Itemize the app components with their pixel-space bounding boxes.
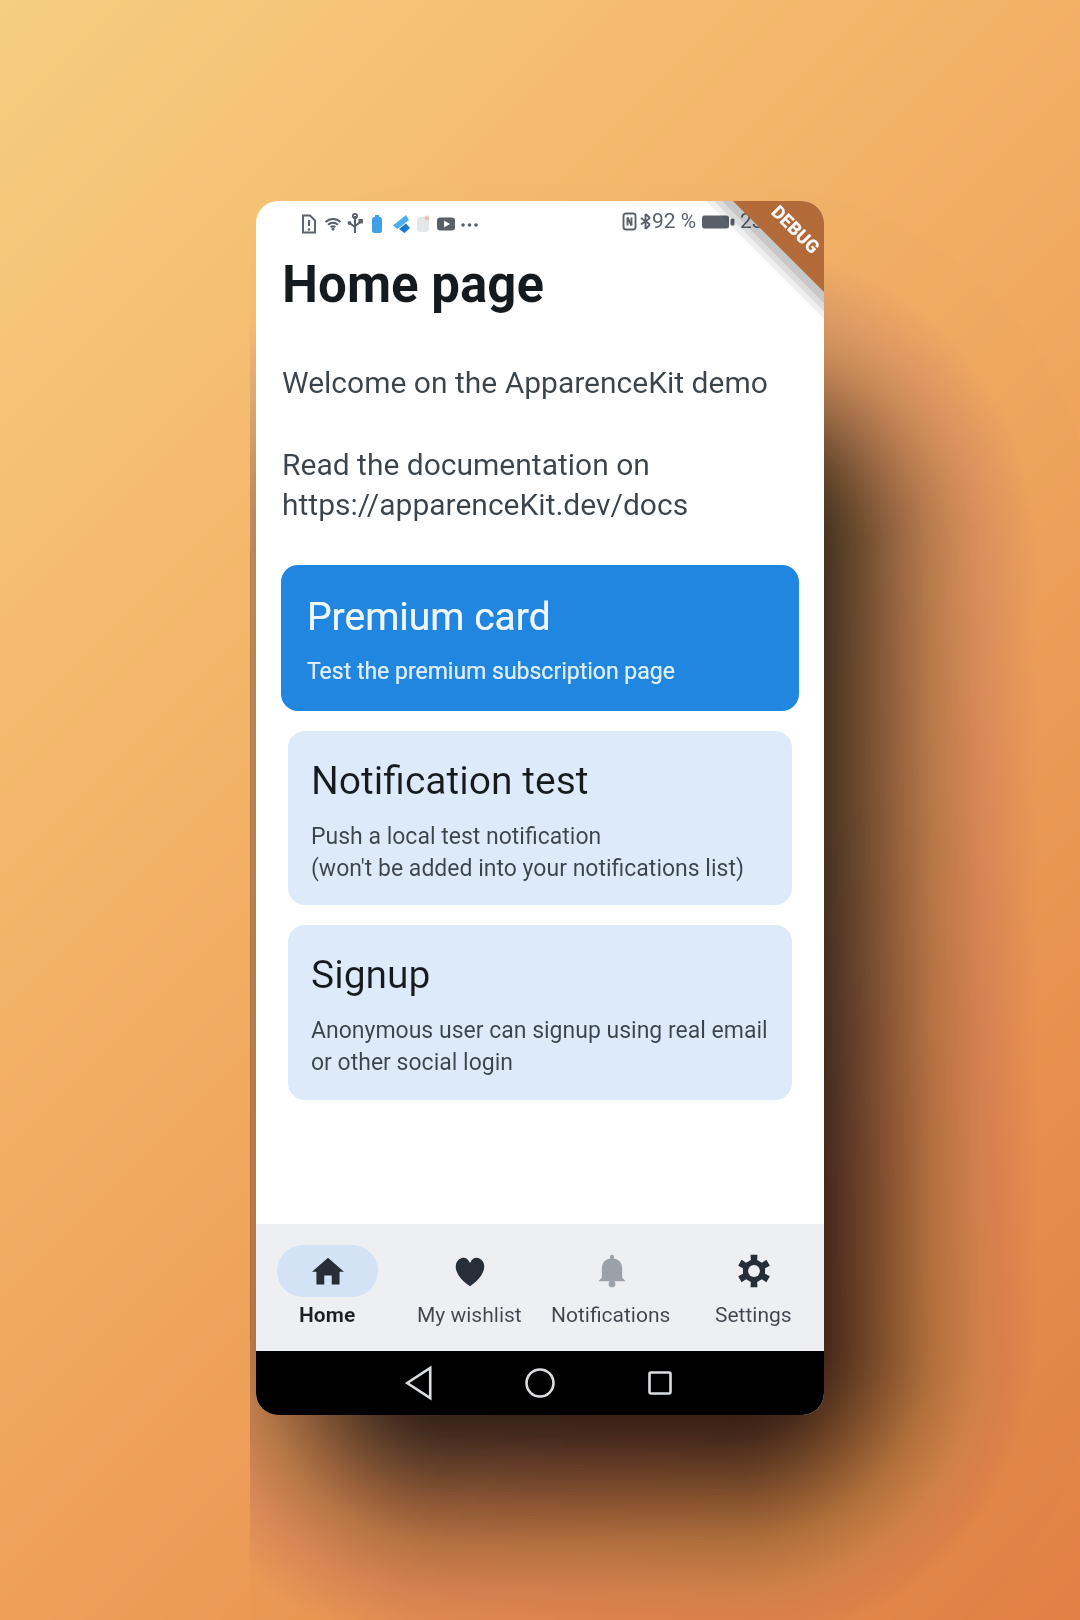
staticText: Anonymous user can signup using real ema… (311, 1017, 768, 1076)
button[interactable]: Settings (682, 1224, 824, 1351)
staticText: Home page (282, 255, 545, 315)
staticText: Welcome on the ApparenceKit demo (282, 365, 768, 400)
staticText: My wishlist (417, 1303, 522, 1328)
staticText: Settings (715, 1303, 792, 1328)
staticText: Test the premium subscription page (307, 658, 675, 685)
button[interactable]: Notifications (540, 1224, 682, 1351)
staticText: Notification test (311, 758, 589, 804)
button[interactable]: Home (256, 1224, 398, 1351)
staticText: 92 % (652, 209, 697, 234)
staticText: Signup (311, 952, 431, 998)
button[interactable]: Recent apps (630, 1353, 690, 1413)
staticText: Home (299, 1303, 356, 1328)
button[interactable]: Signup (288, 925, 792, 1100)
button[interactable]: Home (510, 1353, 570, 1413)
staticText: Notifications (551, 1303, 671, 1328)
staticText: DEBUG (767, 201, 824, 258)
button[interactable]: Notification test (288, 731, 792, 905)
staticText: Push a local test notification (won't be… (311, 823, 744, 882)
button[interactable]: Back (390, 1353, 450, 1413)
button[interactable]: Premium card (281, 565, 799, 711)
button[interactable]: My wishlist (398, 1224, 540, 1351)
staticText: Premium card (307, 594, 551, 640)
staticText: Read the documentation on https://appare… (282, 447, 689, 523)
staticText: 23:5 (740, 209, 781, 234)
